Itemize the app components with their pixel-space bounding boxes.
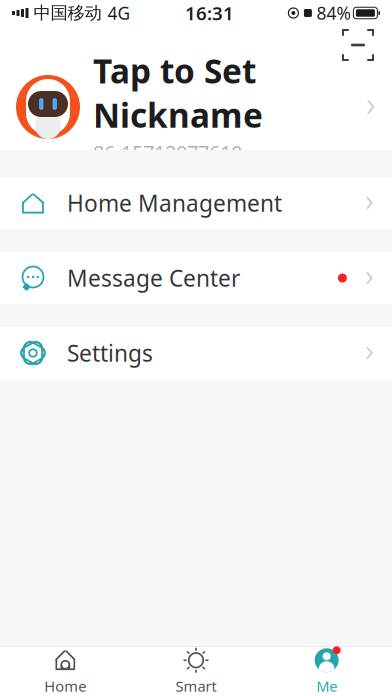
staticText: Smart [175,676,216,696]
staticText: 4G [107,1,130,24]
button[interactable]: Tap to Set Nickname [0,64,392,150]
button[interactable]: Settings [0,327,392,379]
button[interactable]: Message Center [0,252,392,304]
button[interactable]: Smart [131,647,261,696]
staticText: 84% [316,1,350,24]
staticText: 86-15712077610 [93,139,242,166]
staticText: Home [44,676,86,696]
staticText: 16:31 [185,1,234,25]
staticText: 中国移动 [33,2,101,24]
button[interactable]: Home [0,647,131,696]
staticText: Me [316,676,337,696]
staticText: Message Center [67,263,240,293]
staticText: Home Management [67,188,282,218]
staticText: Settings [67,338,153,368]
staticText: Tap to Set Nickname [93,48,263,137]
button[interactable]: Me [261,647,392,696]
button[interactable]: Scan QR code [336,27,380,63]
button[interactable]: Home Management [0,177,392,229]
